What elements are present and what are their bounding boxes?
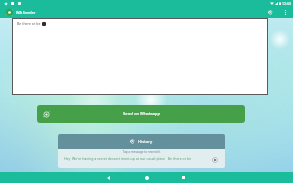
button[interactable]: Home: [141, 172, 152, 183]
button[interactable]: Back: [103, 172, 114, 183]
button[interactable]: History: [265, 7, 276, 18]
staticText: Tap a message to resend it: [58, 150, 225, 154]
staticText: History: [138, 139, 153, 145]
staticText: WA Sender: [16, 10, 36, 15]
button[interactable]: More options: [280, 7, 291, 18]
button[interactable]: Send on Whatsapp: [37, 105, 245, 123]
button[interactable]: Be there or be: [12, 18, 268, 95]
button[interactable]: Delete: [212, 157, 218, 163]
staticText: Be there or be: [17, 21, 42, 26]
staticText: 12:34: [282, 1, 291, 6]
button[interactable]: Recents: [178, 172, 189, 183]
staticText: Hey We're having a secret dessert meet-u…: [64, 156, 192, 161]
button[interactable]: Hey We're having a secret dessert meet-u…: [64, 156, 225, 161]
button[interactable]: WA Sender: [5, 8, 36, 17]
button[interactable]: History: [58, 134, 225, 149]
staticText: Send on Whatsapp: [123, 111, 160, 117]
